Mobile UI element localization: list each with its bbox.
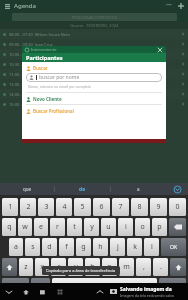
button[interactable]: w: [18, 218, 32, 236]
button[interactable]: i: [118, 218, 133, 236]
staticText: Imagem da tela está sendo salva: [120, 293, 174, 298]
button[interactable]: b: [85, 258, 100, 276]
button[interactable]: d: [42, 238, 57, 256]
button[interactable]: 10:00 - 10:30 Maria Aparecida: [0, 49, 188, 59]
button[interactable]: Shift: [170, 258, 186, 276]
staticText: 6: [99, 202, 104, 212]
staticText: 11:00 - 11:30 Paulo Ricardo: [9, 72, 61, 77]
button[interactable]: 09:00 - 09:30 Joao Cruz: [0, 39, 188, 49]
staticText: j: [117, 242, 119, 252]
button[interactable]: 0: [169, 198, 186, 216]
staticText: Interveniente: [31, 47, 57, 52]
button[interactable]: k: [127, 238, 142, 256]
button[interactable]: 9: [150, 198, 167, 216]
staticText: Buscar: [33, 65, 48, 71]
button[interactable]: r: [50, 218, 65, 236]
button[interactable]: z: [19, 258, 33, 276]
button[interactable]: 6: [93, 198, 110, 216]
button[interactable]: u: [101, 218, 116, 236]
staticText: Quarta - FEVEREIRO, 2024: [70, 23, 119, 28]
button[interactable]: OK: [161, 238, 186, 256]
button[interactable]: m: [119, 258, 134, 276]
button[interactable]: ?123: [2, 278, 29, 296]
button[interactable]: Recents: [38, 287, 48, 297]
button[interactable]: ,: [136, 258, 151, 276]
button[interactable]: x: [35, 258, 49, 276]
staticText: f: [65, 242, 68, 252]
staticText: 10:00 - 10:30 Maria Aparecida: [9, 52, 66, 57]
button[interactable]: 5: [74, 198, 91, 216]
button[interactable]: e: [34, 218, 48, 236]
button[interactable]: Backspace: [169, 218, 186, 236]
button[interactable]: 4: [56, 198, 72, 216]
button[interactable]: 2: [20, 198, 36, 216]
button[interactable]: t: [67, 218, 82, 236]
button[interactable]: q: [2, 218, 16, 236]
staticText: Agenda: [14, 2, 37, 10]
staticText: 3: [44, 202, 49, 212]
button[interactable]: 11:00 - 11:30 Paulo Ricardo: [0, 69, 188, 79]
staticText: PESQUISAR_ESPECIFICO: [72, 15, 118, 20]
staticText: k: [133, 242, 137, 252]
button[interactable]: a: [111, 183, 166, 195]
button[interactable]: y: [84, 218, 99, 236]
button[interactable]: Buscar Profissional: [22, 107, 166, 115]
button[interactable]: 13:00 - 13:30 Ana Beatriz: [0, 79, 188, 89]
button[interactable]: Shift: [2, 258, 17, 276]
button[interactable]: h: [93, 238, 108, 256]
button[interactable]: Screenshot: [55, 287, 65, 297]
button[interactable]: 7: [112, 198, 129, 216]
button[interactable]: Space: [52, 278, 157, 296]
staticText: 1: [8, 202, 13, 212]
staticText: b: [90, 262, 95, 272]
staticText: u: [106, 222, 111, 232]
button[interactable]: .: [153, 258, 168, 276]
button[interactable]: Emoji: [159, 278, 186, 296]
button[interactable]: a: [9, 238, 23, 256]
button[interactable]: Collapse: [95, 287, 105, 297]
button[interactable]: 08:00 - 07:30 Wilson Souza Neto: [0, 29, 188, 39]
button[interactable]: g: [76, 238, 91, 256]
button[interactable]: Close: [157, 47, 163, 53]
button[interactable]: Buscar: [22, 64, 166, 72]
button[interactable]: 15:00 - 15:30 Juliana Alves: [0, 99, 188, 109]
button[interactable]: c: [51, 258, 66, 276]
button[interactable]: Add: [176, 1, 185, 10]
staticText: x: [40, 262, 44, 272]
staticText: de: [79, 186, 86, 193]
staticText: l: [151, 242, 153, 252]
button[interactable]: de: [55, 183, 110, 195]
staticText: que: [23, 186, 32, 192]
staticText: 15:00 - 15:30 Juliana Alves: [9, 102, 59, 107]
button[interactable]: buscar por nome: [26, 73, 162, 82]
button[interactable]: 8: [131, 198, 148, 216]
button[interactable]: 14:00 - 14:30 Roberto Lima: [0, 89, 188, 99]
button[interactable]: Expand suggestions: [166, 183, 188, 195]
button[interactable]: v: [68, 258, 83, 276]
button[interactable]: Menu: [3, 2, 11, 10]
button[interactable]: Hide keyboard: [4, 287, 14, 297]
button[interactable]: Novo Cliente: [22, 95, 166, 103]
staticText: OK: [170, 244, 178, 251]
button[interactable]: PESQUISAR_ESPECIFICO: [12, 13, 177, 21]
button[interactable]: Home: [21, 287, 31, 297]
button[interactable]: 3: [38, 198, 54, 216]
staticText: s: [31, 242, 35, 252]
button[interactable]: que: [0, 183, 54, 195]
staticText: Novo Cliente: [33, 96, 62, 102]
staticText: a: [14, 242, 18, 252]
button[interactable]: l: [144, 238, 159, 256]
button[interactable]: 1: [2, 198, 18, 216]
button[interactable]: s: [25, 238, 40, 256]
button[interactable]: p: [152, 218, 167, 236]
button[interactable]: f: [59, 238, 74, 256]
staticText: r: [56, 222, 59, 232]
button[interactable]: 10:30 - 11:00 Carla Mendes: [0, 59, 188, 69]
button[interactable]: o: [135, 218, 150, 236]
staticText: Participantes: [26, 54, 63, 61]
button[interactable]: j: [110, 238, 125, 256]
staticText: 10:30 - 11:00 Carla Mendes: [9, 62, 61, 67]
button[interactable]: Settings: [31, 278, 50, 296]
button[interactable]: n: [102, 258, 117, 276]
